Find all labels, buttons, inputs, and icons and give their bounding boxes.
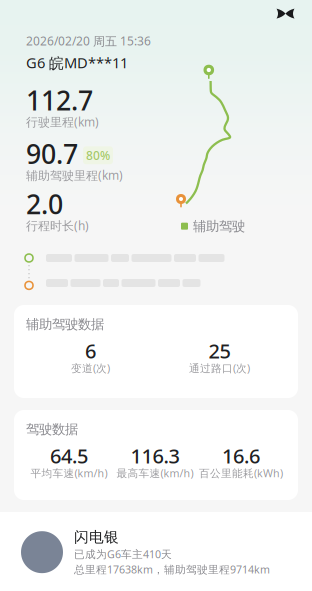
staticText: 通过路口(次) — [189, 361, 250, 375]
button[interactable]: Close — [270, 3, 300, 25]
staticText: 辅助驾驶里程(km) — [26, 167, 123, 183]
staticText: 行程时长(h) — [26, 218, 89, 233]
staticText: 变道(次) — [71, 361, 110, 375]
staticText: 总里程17638km，辅助驾驶里程9714km — [74, 562, 270, 576]
staticText: 驾驶数据 — [26, 421, 78, 437]
staticText: 辅助驾驶数据 — [26, 316, 104, 332]
staticText: 112.7 — [26, 82, 93, 118]
staticText: 16.6 — [222, 442, 260, 469]
staticText: 辅助驾驶 — [193, 218, 245, 234]
staticText: 行驶里程(km) — [26, 114, 99, 130]
staticText: 6 — [85, 337, 96, 364]
staticText: 已成为G6车主410天 — [74, 547, 172, 561]
staticText: 2.0 — [26, 186, 63, 222]
staticText: 2026/02/20 周五 15:36 — [26, 33, 151, 49]
staticText: 最高车速(km/h) — [116, 466, 193, 480]
staticText: 80% — [86, 147, 110, 163]
staticText: 百公里能耗(kWh) — [199, 466, 283, 480]
staticText: 64.5 — [50, 442, 88, 469]
staticText: 90.7 — [26, 136, 78, 171]
button[interactable]: 闪电银 — [0, 512, 312, 591]
staticText: G6 皖MD***11 — [26, 53, 128, 72]
staticText: 平均车速(km/h) — [30, 466, 107, 480]
staticText: 116.3 — [130, 442, 179, 469]
staticText: 25 — [208, 337, 230, 364]
staticText: 闪电银 — [74, 528, 119, 546]
